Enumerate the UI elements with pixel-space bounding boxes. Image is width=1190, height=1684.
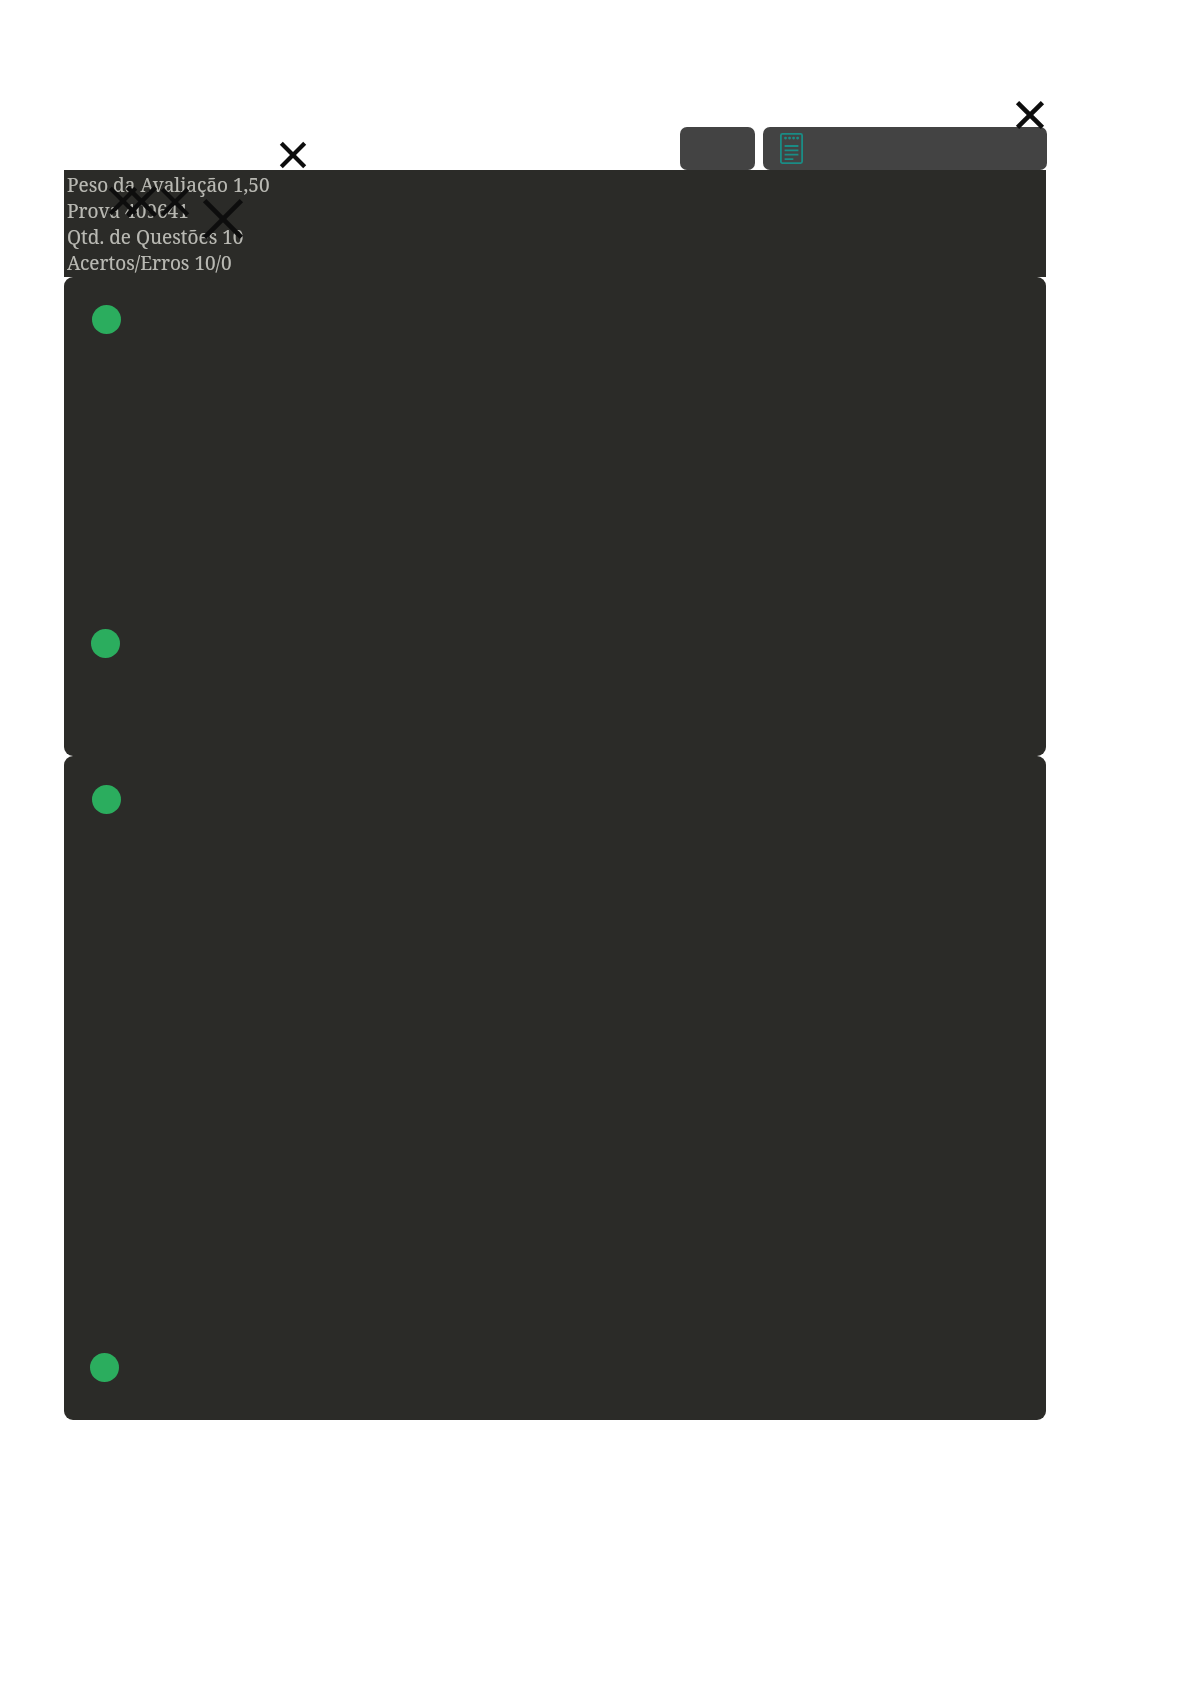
button[interactable]: Close [275, 137, 311, 173]
button[interactable] [64, 277, 1046, 756]
button[interactable]: Close [1010, 95, 1050, 135]
button[interactable]: Menu [680, 127, 755, 170]
staticText: Prova 409641 [67, 198, 189, 224]
button[interactable] [64, 756, 1046, 1420]
button[interactable]: Notes [763, 127, 1047, 170]
staticText: Acertos/Erros 10/0 [67, 250, 232, 276]
staticText: Qtd. de Questões 10 [67, 224, 244, 250]
staticText: Peso da Avaliação 1,50 [67, 172, 270, 198]
